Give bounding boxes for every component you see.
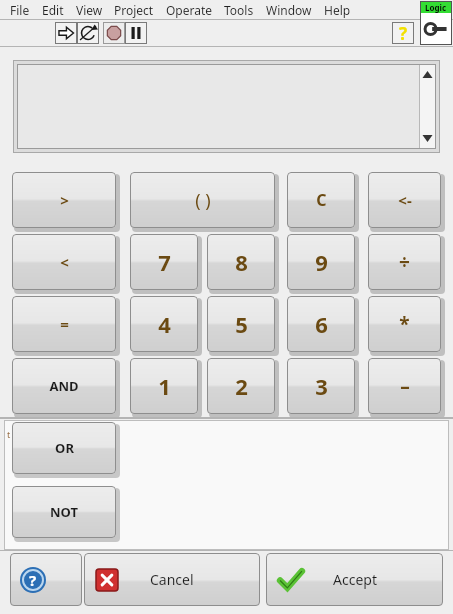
staticText: NOT [50, 503, 78, 521]
button[interactable]: Help [320, 0, 355, 19]
staticText: – [400, 373, 410, 399]
button[interactable]: = [12, 296, 118, 354]
button[interactable]: 6 [287, 296, 357, 354]
button[interactable]: 3 [287, 358, 357, 416]
button[interactable]: < [12, 234, 118, 292]
staticText: Cancel [150, 570, 194, 589]
button[interactable]: 4 [130, 296, 200, 354]
button[interactable]: File [6, 0, 34, 19]
button[interactable]: Pause [125, 22, 147, 44]
button[interactable]: Run continuously [77, 22, 99, 44]
button[interactable]: AND [12, 358, 118, 416]
staticText: 9 [315, 247, 328, 277]
staticText: 1 [158, 371, 171, 401]
button[interactable]: ( ) [130, 172, 277, 230]
staticText: C [316, 189, 327, 211]
button[interactable]: Window [262, 0, 316, 19]
staticText: > [60, 190, 69, 210]
button[interactable]: Help [10, 553, 82, 606]
button[interactable]: Accept [266, 553, 443, 606]
button[interactable]: Operate [162, 0, 217, 19]
button[interactable]: OR [12, 422, 118, 476]
button[interactable]: 1 [130, 358, 200, 416]
button[interactable]: View [72, 0, 107, 19]
button[interactable]: 9 [287, 234, 357, 292]
button[interactable]: 5 [207, 296, 277, 354]
staticText: ? [29, 570, 37, 590]
staticText: ( ) [195, 188, 211, 213]
staticText: 3 [315, 371, 328, 401]
staticText: Window [266, 2, 312, 18]
staticText: 5 [235, 309, 248, 339]
staticText: File [10, 2, 30, 18]
staticText: Tools [224, 2, 254, 18]
staticText: 7 [158, 247, 171, 277]
staticText: View [76, 2, 103, 18]
staticText: ÷ [399, 249, 410, 275]
button[interactable]: Edit [38, 0, 68, 19]
button[interactable]: Logic tool [420, 1, 452, 45]
staticText: <- [398, 190, 412, 210]
staticText: < [60, 252, 69, 272]
staticText: ? [399, 22, 408, 44]
button[interactable]: ÷ [368, 234, 443, 292]
staticText: = [60, 314, 69, 334]
staticText: Operate [166, 2, 213, 18]
staticText: OR [55, 439, 74, 457]
button[interactable]: Help [392, 22, 414, 44]
staticText: 4 [158, 309, 171, 339]
staticText: Project [114, 2, 154, 18]
button[interactable]: 2 [207, 358, 277, 416]
button[interactable]: Abort execution [103, 22, 125, 44]
staticText: 6 [315, 309, 328, 339]
button[interactable]: Project [110, 0, 158, 19]
button[interactable]: Run [55, 22, 77, 44]
button[interactable]: * [368, 296, 443, 354]
staticText: 2 [235, 371, 248, 401]
staticText: Help [324, 2, 351, 18]
staticText: AND [49, 377, 79, 395]
button[interactable]: <- [368, 172, 443, 230]
staticText: Logic [425, 2, 447, 13]
staticText: Accept [333, 570, 377, 589]
button[interactable]: – [368, 358, 443, 416]
button[interactable]: Tools [220, 0, 258, 19]
button[interactable]: 7 [130, 234, 200, 292]
button[interactable]: 8 [207, 234, 277, 292]
staticText: * [399, 311, 410, 337]
button[interactable]: > [12, 172, 118, 230]
button[interactable]: Cancel [84, 553, 260, 606]
staticText: Edit [42, 2, 64, 18]
button[interactable]: C [287, 172, 357, 230]
button[interactable]: NOT [12, 486, 118, 540]
staticText: t [7, 428, 11, 440]
staticText: 8 [235, 247, 248, 277]
